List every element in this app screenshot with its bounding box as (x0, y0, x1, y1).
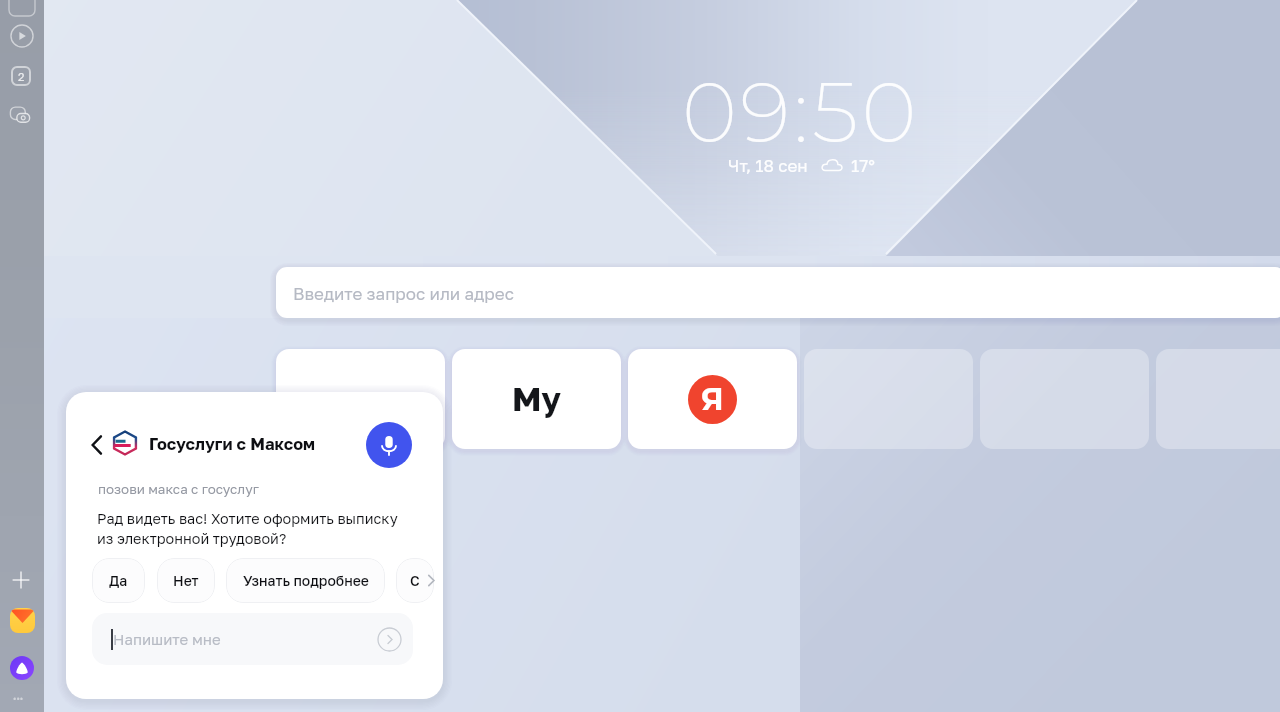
button[interactable]: Да (92, 558, 145, 603)
staticText: Да (109, 572, 128, 589)
staticText: С (410, 572, 420, 589)
staticText: Введите запрос или адрес (293, 283, 514, 303)
staticText: My (512, 379, 562, 419)
button[interactable]: Mail (10, 608, 35, 633)
staticText: 17° (851, 155, 875, 175)
button[interactable]: С (396, 558, 434, 603)
button[interactable]: ••• (13, 692, 24, 704)
button[interactable]: Напишите мне (92, 613, 413, 665)
button[interactable]: New tab (11, 570, 31, 590)
staticText: Узнать подробнее (243, 572, 369, 589)
button[interactable]: Screenshot (8, 103, 32, 127)
button[interactable]: Введите запрос или адрес (276, 267, 1280, 318)
button[interactable]: History (10, 24, 34, 48)
staticText: 2 (18, 70, 25, 83)
button[interactable]: Alice assistant (10, 656, 34, 680)
button[interactable] (276, 349, 445, 449)
staticText: 09:50 (682, 61, 920, 163)
button[interactable]: Я (628, 349, 797, 449)
staticText: Нет (173, 572, 199, 589)
staticText: Я (701, 380, 724, 418)
button[interactable]: My (452, 349, 621, 449)
button[interactable]: Voice input (366, 422, 412, 468)
staticText: Госуслуги с Максом (149, 434, 315, 454)
staticText: позови макса с госуслуг (98, 481, 259, 497)
button[interactable]: Send (377, 627, 402, 652)
button[interactable]: Нет (157, 558, 215, 603)
staticText: Чт, 18 сен (728, 155, 808, 175)
staticText: Рад видеть вас! Хотите оформить выписку … (97, 510, 398, 547)
button[interactable]: Tabs: 2 (11, 66, 31, 86)
button[interactable]: Back (88, 433, 106, 457)
button[interactable]: Узнать подробнее (226, 558, 385, 603)
staticText: Напишите мне (113, 630, 221, 648)
